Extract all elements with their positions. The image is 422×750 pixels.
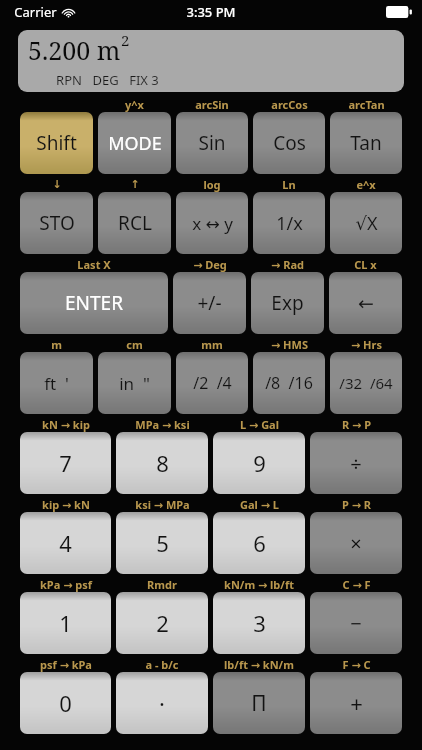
staticText: ft ' bbox=[44, 372, 69, 395]
staticText: STO bbox=[39, 210, 75, 236]
staticText: ↓ bbox=[52, 178, 62, 191]
staticText: Π bbox=[251, 689, 267, 718]
staticText: → Deg bbox=[193, 257, 227, 272]
button[interactable]: Sin bbox=[176, 112, 248, 174]
button[interactable]: 6 bbox=[213, 512, 305, 574]
staticText: ENTER bbox=[65, 290, 123, 316]
staticText: Gal → L bbox=[240, 497, 279, 512]
staticText: cm bbox=[126, 337, 143, 352]
staticText: kPa → psf bbox=[40, 577, 92, 592]
button[interactable]: +/- bbox=[173, 272, 246, 334]
button[interactable]: √X bbox=[330, 192, 402, 254]
button[interactable]: 5.200 m bbox=[18, 30, 404, 92]
button[interactable]: 7 bbox=[20, 432, 111, 494]
staticText: in " bbox=[119, 372, 150, 395]
staticText: Carrier bbox=[14, 3, 57, 21]
button[interactable]: ENTER bbox=[20, 272, 168, 334]
staticText: Cos bbox=[273, 130, 306, 156]
staticText: Shift bbox=[36, 130, 77, 156]
staticText: Ln bbox=[282, 177, 296, 192]
staticText: arcTan bbox=[348, 97, 385, 112]
button[interactable]: /2 /4 bbox=[176, 352, 248, 414]
staticText: 5 bbox=[156, 528, 169, 558]
button[interactable]: Multiply bbox=[310, 512, 402, 574]
staticText: RPN bbox=[56, 71, 82, 89]
button[interactable]: STO bbox=[20, 192, 93, 254]
staticText: R → P bbox=[342, 417, 371, 432]
button[interactable]: 4 bbox=[20, 512, 111, 574]
staticText: 7 bbox=[59, 448, 72, 478]
button[interactable]: Plus bbox=[310, 672, 402, 734]
staticText: 2 bbox=[121, 30, 130, 50]
staticText: L → Gal bbox=[240, 417, 279, 432]
staticText: 1 bbox=[59, 608, 72, 638]
staticText: → Rad bbox=[271, 257, 304, 272]
button[interactable]: 2 bbox=[116, 592, 208, 654]
button[interactable]: in " bbox=[98, 352, 171, 414]
staticText: ← bbox=[358, 292, 374, 314]
staticText: 9 bbox=[253, 448, 266, 478]
button[interactable]: 9 bbox=[213, 432, 305, 494]
button[interactable]: 1 bbox=[20, 592, 111, 654]
staticText: F → C bbox=[342, 657, 371, 672]
staticText: DEG bbox=[92, 71, 119, 89]
staticText: 2 bbox=[156, 608, 169, 638]
button[interactable]: 0 bbox=[20, 672, 111, 734]
button[interactable]: ft ' bbox=[20, 352, 93, 414]
button[interactable]: Exp bbox=[251, 272, 324, 334]
staticText: kip → kN bbox=[42, 497, 90, 512]
staticText: Tan bbox=[350, 130, 382, 156]
button[interactable]: Backspace bbox=[329, 272, 402, 334]
button[interactable]: /8 /16 bbox=[253, 352, 325, 414]
staticText: 0 bbox=[59, 688, 72, 718]
button[interactable]: Cos bbox=[253, 112, 325, 174]
button[interactable]: Pi bbox=[213, 672, 305, 734]
button[interactable]: MODE bbox=[98, 112, 171, 174]
staticText: C → F bbox=[342, 577, 371, 592]
staticText: 8 bbox=[156, 448, 169, 478]
staticText: Last X bbox=[77, 257, 111, 272]
staticText: 3 bbox=[253, 608, 266, 638]
button[interactable]: 8 bbox=[116, 432, 208, 494]
staticText: Exp bbox=[271, 290, 304, 316]
staticText: arcCos bbox=[271, 97, 308, 112]
staticText: /32 /64 bbox=[339, 373, 393, 393]
staticText: 5.200 m bbox=[28, 33, 121, 67]
staticText: 4 bbox=[59, 528, 72, 558]
staticText: kN/m → lb/ft bbox=[224, 577, 294, 592]
button[interactable]: /32 /64 bbox=[330, 352, 402, 414]
staticText: m bbox=[51, 337, 62, 352]
staticText: ↑ bbox=[130, 178, 140, 191]
staticText: RCL bbox=[118, 210, 152, 236]
staticText: 1/x bbox=[276, 211, 303, 236]
staticText: FIX 3 bbox=[129, 71, 159, 89]
staticText: kN → kip bbox=[42, 417, 90, 432]
staticText: − bbox=[350, 610, 362, 637]
button[interactable]: 5 bbox=[116, 512, 208, 574]
staticText: arcSin bbox=[195, 97, 229, 112]
staticText: ksi → MPa bbox=[135, 497, 190, 512]
staticText: √X bbox=[355, 211, 378, 236]
staticText: psf → kPa bbox=[40, 657, 92, 672]
button[interactable]: Divide bbox=[310, 432, 402, 494]
staticText: Sin bbox=[198, 130, 226, 156]
staticText: 6 bbox=[253, 528, 266, 558]
staticText: log bbox=[203, 177, 221, 192]
button[interactable]: Tan bbox=[330, 112, 402, 174]
button[interactable]: 3 bbox=[213, 592, 305, 654]
staticText: ÷ bbox=[350, 450, 362, 477]
staticText: e^x bbox=[356, 177, 376, 192]
button[interactable]: Decimal point bbox=[116, 672, 208, 734]
button[interactable]: x ↔ y bbox=[176, 192, 248, 254]
button[interactable]: Shift bbox=[20, 112, 93, 174]
staticText: MPa → ksi bbox=[135, 417, 190, 432]
button[interactable]: RCL bbox=[98, 192, 171, 254]
staticText: y^x bbox=[125, 97, 144, 112]
staticText: /8 /16 bbox=[265, 372, 313, 394]
staticText: lb/ft → kN/m bbox=[224, 657, 294, 672]
staticText: CL x bbox=[354, 257, 377, 272]
button[interactable]: Minus bbox=[310, 592, 402, 654]
staticText: + bbox=[350, 688, 363, 718]
staticText: x ↔ y bbox=[192, 212, 233, 235]
button[interactable]: 1/x bbox=[253, 192, 325, 254]
